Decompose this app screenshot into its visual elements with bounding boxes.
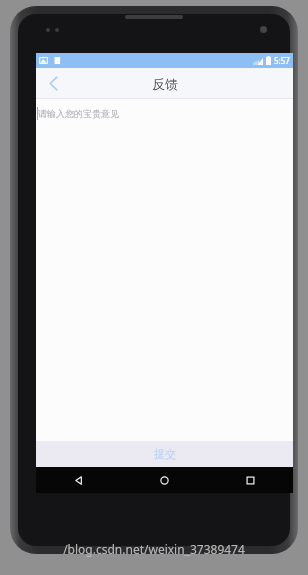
button[interactable]: 请输入您的宝贵意见 — [37, 107, 293, 120]
staticText: 5:57 — [274, 55, 290, 66]
staticText: /blog.csdn.net/weixin_37389474 — [0, 541, 308, 557]
button[interactable]: Home — [121, 467, 207, 493]
staticText: 反馈 — [152, 76, 178, 92]
button[interactable]: Back — [36, 467, 121, 493]
staticText: 提交 — [154, 447, 176, 461]
staticText: 请输入您的宝贵意见 — [38, 108, 119, 119]
button[interactable]: Recent apps — [207, 467, 293, 493]
button[interactable]: Back — [36, 68, 70, 99]
button[interactable]: 提交 — [36, 441, 293, 467]
